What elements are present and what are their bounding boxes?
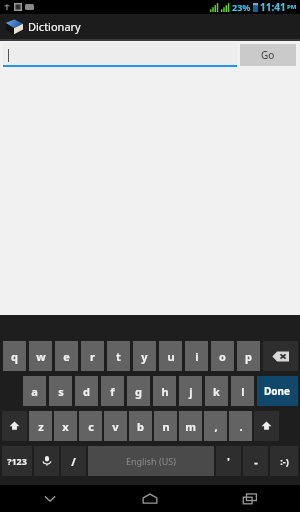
staticText: p bbox=[245, 349, 252, 364]
button[interactable]: , bbox=[204, 411, 227, 441]
staticText: PM bbox=[287, 3, 297, 11]
staticText: f bbox=[110, 384, 115, 399]
staticText: j bbox=[189, 384, 193, 399]
staticText: h bbox=[161, 384, 169, 399]
button[interactable]: / bbox=[61, 446, 86, 476]
button[interactable]: i bbox=[185, 341, 208, 371]
button[interactable]: p bbox=[237, 341, 260, 371]
staticText: o bbox=[219, 349, 226, 364]
button[interactable]: d bbox=[75, 376, 98, 406]
staticText: ' bbox=[227, 454, 230, 469]
button[interactable]: Shift bbox=[254, 411, 279, 441]
button[interactable]: f bbox=[101, 376, 124, 406]
staticText: u bbox=[167, 349, 175, 364]
staticText: m bbox=[185, 419, 196, 434]
staticText: k bbox=[213, 384, 220, 399]
button[interactable]: o bbox=[211, 341, 234, 371]
staticText: w bbox=[36, 349, 46, 364]
staticText: Done bbox=[264, 384, 291, 398]
button[interactable] bbox=[3, 43, 237, 67]
button[interactable]: - bbox=[243, 446, 268, 476]
staticText: 23% bbox=[232, 1, 251, 13]
button[interactable]: t bbox=[107, 341, 130, 371]
staticText: 11:41 bbox=[260, 0, 286, 14]
staticText: c bbox=[88, 419, 94, 434]
button[interactable]: Delete bbox=[263, 341, 298, 371]
staticText: Go bbox=[261, 48, 275, 62]
staticText: d bbox=[83, 384, 90, 399]
button[interactable]: j bbox=[179, 376, 202, 406]
staticText: v bbox=[112, 419, 119, 434]
button[interactable]: ' bbox=[216, 446, 241, 476]
button[interactable]: Go bbox=[240, 44, 296, 66]
button[interactable]: English (US) bbox=[88, 446, 214, 476]
staticText: x bbox=[62, 419, 69, 434]
button[interactable]: Back bbox=[0, 485, 100, 512]
button[interactable]: e bbox=[55, 341, 78, 371]
button[interactable]: l bbox=[231, 376, 254, 406]
button[interactable]: n bbox=[154, 411, 177, 441]
staticText: - bbox=[254, 454, 258, 469]
staticText: b bbox=[137, 419, 144, 434]
button[interactable]: m bbox=[179, 411, 202, 441]
staticText: q bbox=[11, 349, 18, 364]
button[interactable]: . bbox=[229, 411, 252, 441]
button[interactable]: :-) bbox=[270, 446, 298, 476]
staticText: , bbox=[214, 419, 218, 434]
button[interactable]: s bbox=[49, 376, 72, 406]
button[interactable]: h bbox=[153, 376, 176, 406]
button[interactable]: c bbox=[79, 411, 102, 441]
button[interactable]: Home bbox=[100, 485, 200, 512]
button[interactable]: y bbox=[133, 341, 156, 371]
staticText: e bbox=[63, 349, 70, 364]
button[interactable]: z bbox=[29, 411, 52, 441]
staticText: English (US) bbox=[126, 455, 176, 467]
button[interactable]: u bbox=[159, 341, 182, 371]
staticText: n bbox=[162, 419, 170, 434]
staticText: l bbox=[241, 384, 245, 399]
button[interactable]: b bbox=[129, 411, 152, 441]
staticText: i bbox=[195, 349, 199, 364]
staticText: . bbox=[239, 419, 243, 434]
staticText: a bbox=[31, 384, 38, 399]
button[interactable]: ?123 bbox=[2, 446, 32, 476]
button[interactable]: x bbox=[54, 411, 77, 441]
button[interactable]: a bbox=[23, 376, 46, 406]
staticText: / bbox=[71, 454, 76, 469]
staticText: r bbox=[90, 349, 95, 364]
button[interactable]: g bbox=[127, 376, 150, 406]
staticText: g bbox=[135, 384, 142, 399]
button[interactable]: Recent apps bbox=[200, 485, 300, 512]
staticText: s bbox=[58, 384, 64, 399]
button[interactable]: w bbox=[29, 341, 52, 371]
staticText: ?123 bbox=[7, 455, 27, 467]
button[interactable]: Done bbox=[257, 376, 298, 406]
button[interactable]: Shift bbox=[2, 411, 27, 441]
staticText: y bbox=[141, 349, 148, 364]
button[interactable]: k bbox=[205, 376, 228, 406]
staticText: t bbox=[116, 349, 121, 364]
button[interactable]: v bbox=[104, 411, 127, 441]
staticText: z bbox=[38, 419, 44, 434]
button[interactable]: r bbox=[81, 341, 104, 371]
staticText: :-) bbox=[280, 455, 289, 467]
button[interactable]: q bbox=[3, 341, 26, 371]
button[interactable]: Voice input bbox=[34, 446, 59, 476]
staticText: Dictionary bbox=[28, 19, 81, 34]
